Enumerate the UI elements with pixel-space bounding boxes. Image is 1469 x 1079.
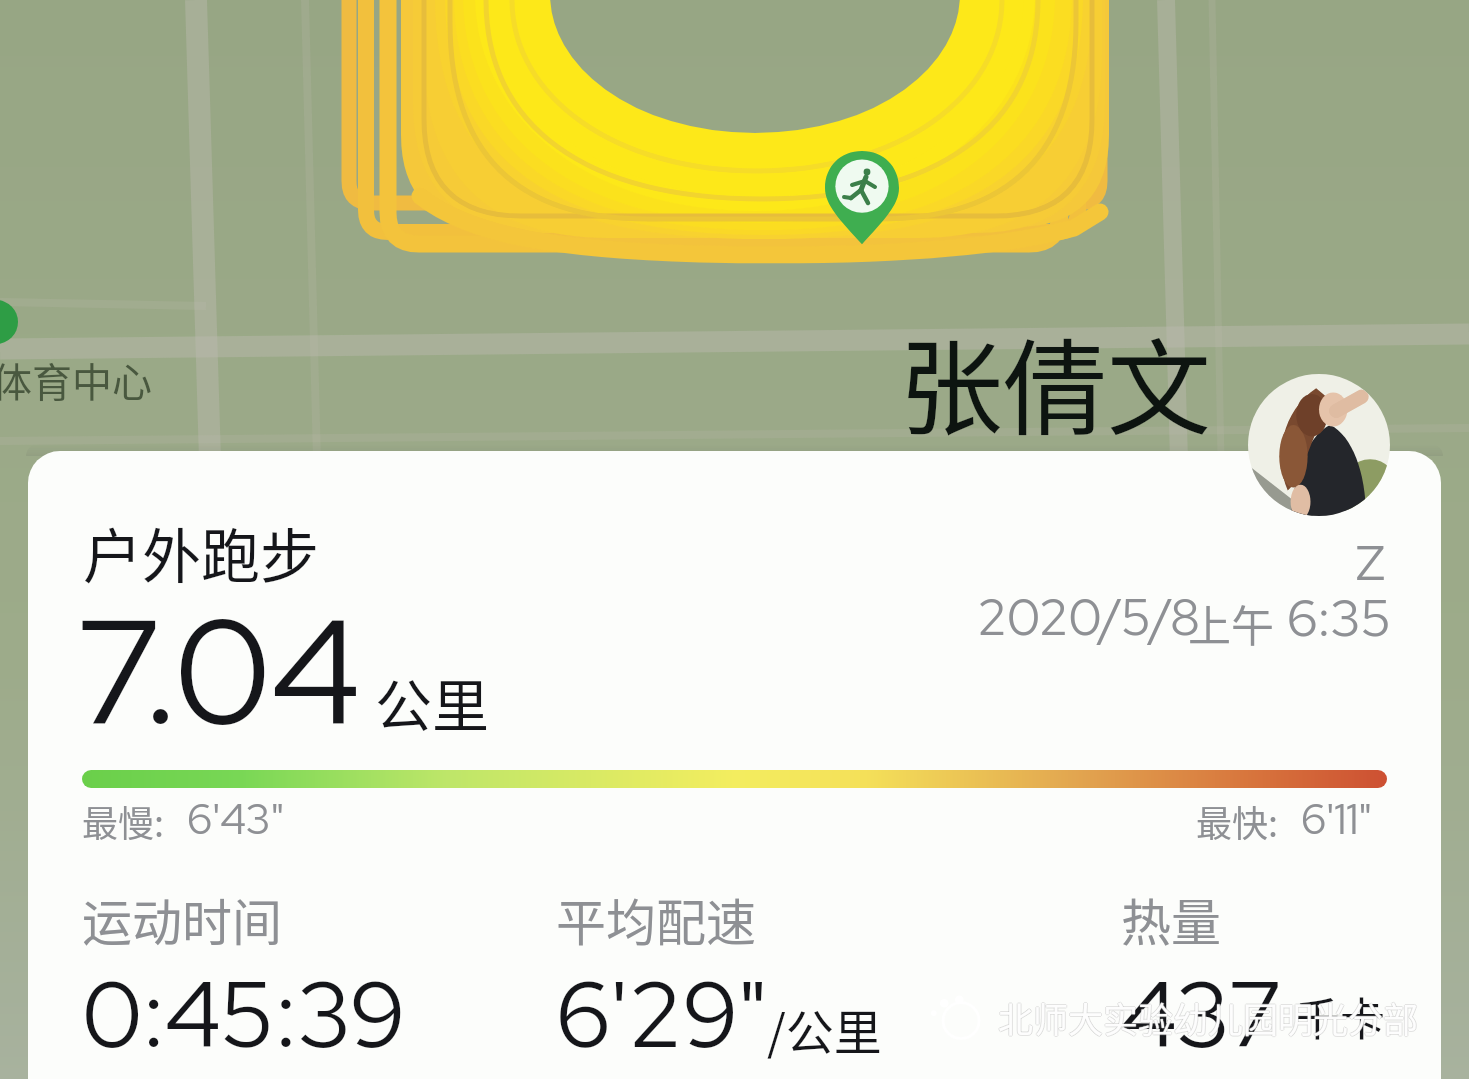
staticText: 7.04 <box>75 574 362 767</box>
button[interactable]: 运动时间 <box>82 883 406 1003</box>
staticText: 2020/5/8 <box>977 584 1200 650</box>
staticText: 户外跑步 <box>83 510 320 595</box>
button[interactable]: 热量 <box>1121 883 1283 1003</box>
button[interactable]: Profile avatar <box>1248 374 1390 516</box>
staticText: 北师大实验幼儿园明光分部 <box>998 993 1419 1044</box>
staticText: Z <box>1356 531 1385 595</box>
button[interactable]: 户外跑步 7.04 公里 run summary <box>28 451 1441 1079</box>
staticText: 6'43" <box>187 791 285 847</box>
staticText: 运动时间 <box>82 883 282 955</box>
staticText: 体育中心 <box>0 351 152 409</box>
staticText: 北师大实验幼儿园明光分部 <box>998 992 1419 1043</box>
staticText: 最慢: <box>82 795 165 847</box>
staticText: 0:45:39 <box>82 953 406 1073</box>
staticText: 北师大实验幼儿园明光分部 <box>999 992 1420 1043</box>
staticText: 6:35 <box>1287 584 1392 651</box>
button[interactable]: 平均配速 <box>556 883 768 1003</box>
staticText: 最快: <box>1196 795 1279 847</box>
staticText: 千卡 <box>1295 984 1386 1049</box>
staticText: 平均配速 <box>556 883 756 955</box>
staticText: 6'29" <box>556 953 768 1073</box>
staticText: 6'11" <box>1301 791 1372 847</box>
staticText: 北师大实验幼儿园明光分部 <box>997 992 1418 1043</box>
staticText: 437 <box>1121 953 1283 1073</box>
staticText: 北师大实验幼儿园明光分部 <box>998 991 1419 1042</box>
staticText: 张倩文 <box>899 306 1212 457</box>
staticText: 上午 <box>1188 592 1274 654</box>
staticText: 公里 <box>375 661 489 744</box>
staticText: /公里 <box>767 994 882 1064</box>
staticText: 热量 <box>1121 883 1221 955</box>
